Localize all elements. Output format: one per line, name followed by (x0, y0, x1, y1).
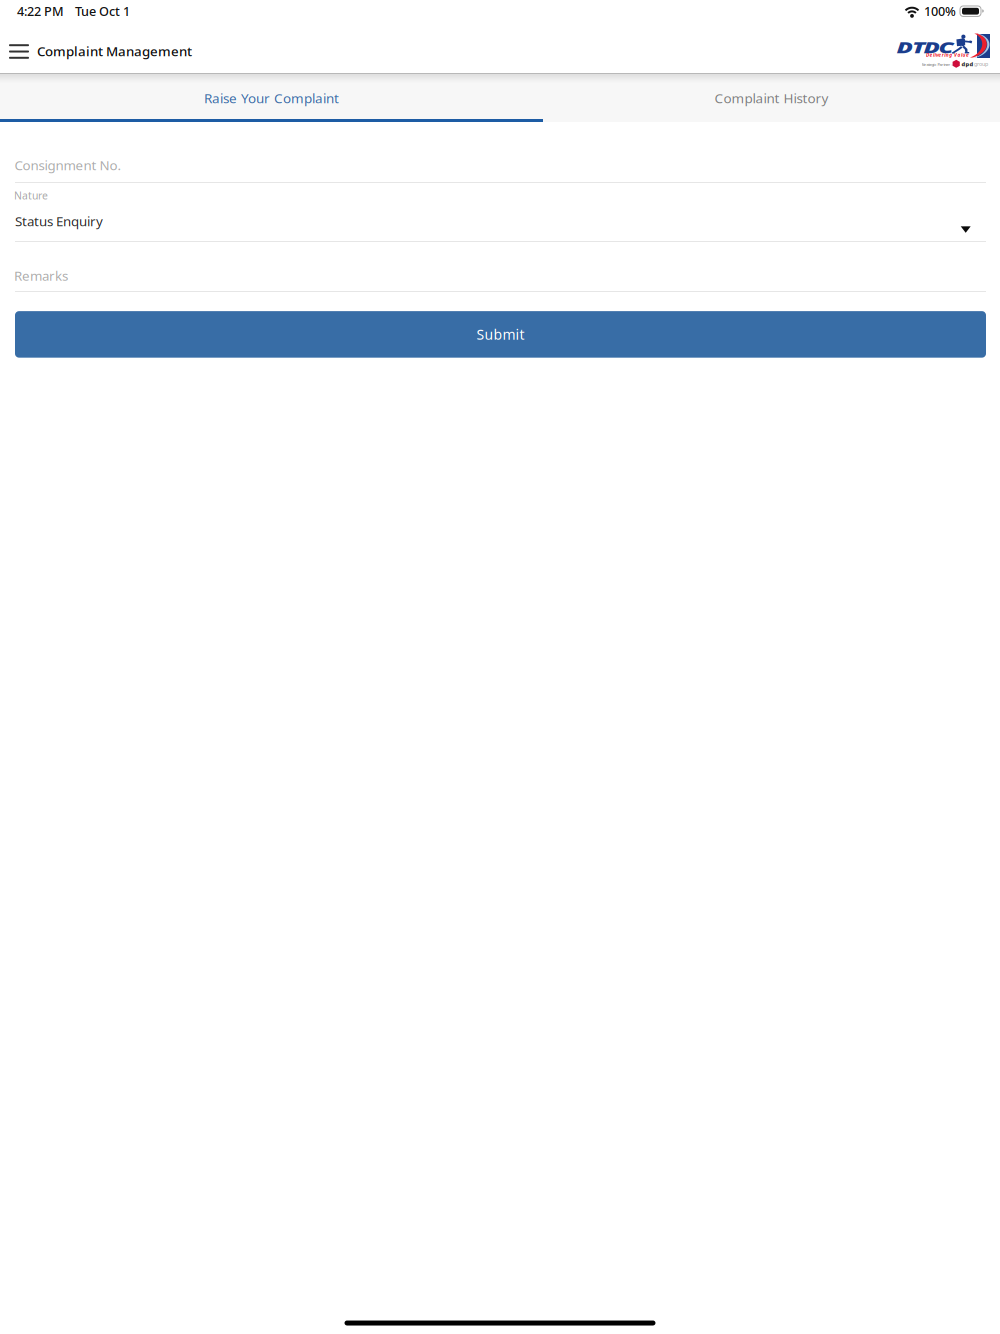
button[interactable]: Complaint History (543, 74, 1000, 122)
staticText: Remarks (14, 266, 68, 285)
staticText: Complaint Management (37, 42, 192, 60)
staticText: C (942, 38, 951, 57)
staticText: Raise Your Complaint (204, 89, 339, 107)
staticText: D (927, 38, 937, 57)
staticText: 4:22 PM (17, 3, 64, 20)
staticText: Consignment No. (14, 156, 121, 174)
staticText: Complaint History (714, 89, 828, 107)
staticText: dpd (961, 60, 973, 68)
button[interactable]: Submit (15, 311, 986, 358)
staticText: Nature (14, 188, 48, 203)
button[interactable]: Menu (0, 24, 37, 73)
staticText: T (915, 38, 923, 57)
staticText: 100% (924, 3, 956, 20)
button[interactable]: Raise Your Complaint (0, 74, 543, 122)
staticText: Delivering Value (926, 52, 969, 58)
staticText: Status Enquiry (15, 212, 103, 230)
staticText: group (974, 60, 988, 68)
staticText: D (900, 38, 910, 57)
staticText: Tue Oct 1 (75, 3, 130, 20)
staticText: Strategic Partner : (921, 62, 952, 67)
staticText: Submit (476, 325, 524, 344)
